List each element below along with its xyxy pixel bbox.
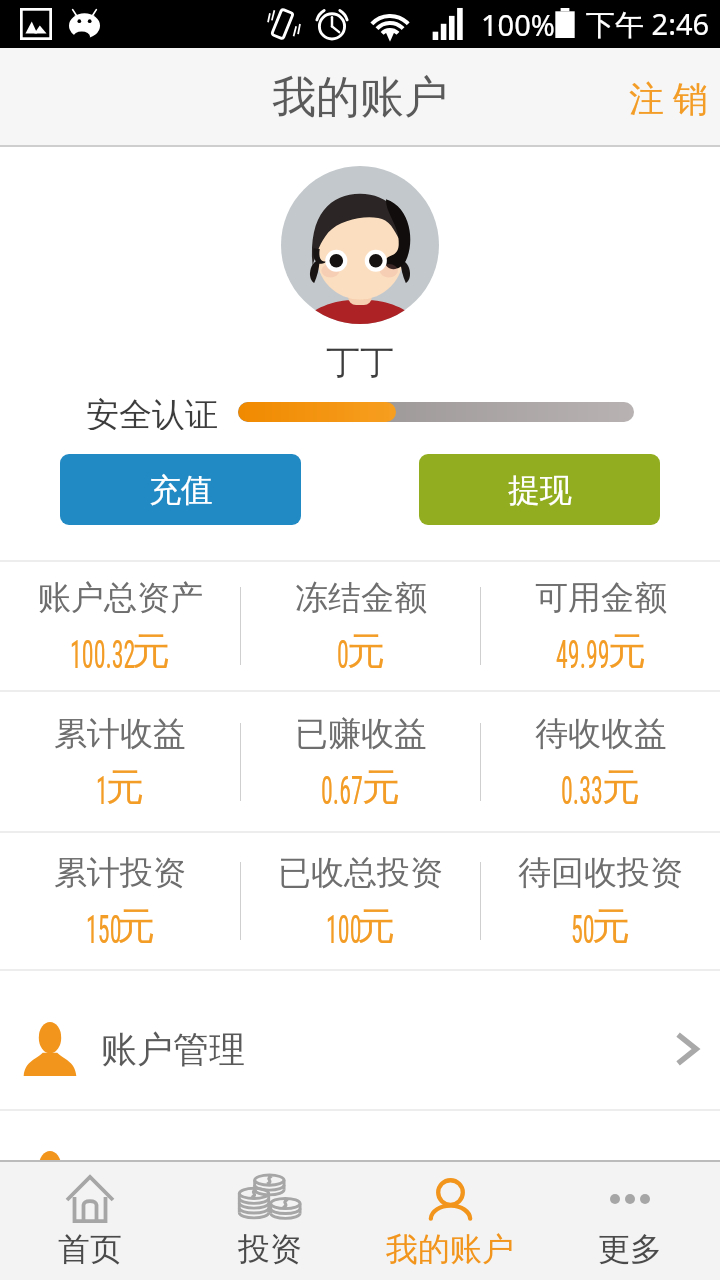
button[interactable]: My Account [360,1162,540,1280]
staticText: 账户总资产 [38,577,203,619]
staticText: 我的账户 [386,1229,514,1269]
staticText: 元 [592,902,630,950]
staticText: 元 [357,902,395,950]
staticText: 0.33 [561,769,603,805]
staticText: 元 [608,627,646,675]
button[interactable]: 提现 [419,454,660,525]
staticText: 元 [347,627,385,675]
button[interactable]: 账户管理 [0,971,720,1109]
staticText: 更多 [598,1229,662,1269]
staticText: 下午 2:46 [586,4,710,44]
staticText: 元 [602,763,640,811]
button[interactable]: 待收收益 [481,692,720,831]
staticText: 1 [96,769,108,805]
button[interactable]: 冻结金额 [241,562,480,690]
staticText: 49.99 [556,633,610,669]
button[interactable]: 资金管理 [0,1111,720,1226]
staticText: 安全认证 [86,394,218,430]
staticText: 50 [571,908,595,944]
staticText: 注 销 [629,74,709,122]
staticText: 可用金额 [535,577,667,619]
staticText: 100 [326,908,362,944]
button[interactable]: 可用金额 [481,562,720,690]
staticText: 100% [481,5,555,44]
button[interactable]: 充值 [60,454,301,525]
button[interactable]: 账户总资产 [0,562,240,690]
staticText: 首页 [58,1229,122,1269]
staticText: 元 [106,763,144,811]
button[interactable]: 已赚收益 [241,692,480,831]
staticText: 资金管理 [101,1155,245,1200]
button[interactable]: More [540,1162,720,1280]
button[interactable]: 待回收投资 [481,833,720,969]
staticText: 累计收益 [54,713,186,755]
staticText: 投资 [238,1229,302,1269]
button[interactable]: Home [0,1162,180,1280]
staticText: 我的账户 [272,70,448,125]
staticText: 元 [362,763,400,811]
staticText: 150 [86,908,122,944]
button[interactable]: 累计收益 [0,692,240,831]
staticText: 丁丁 [326,341,394,384]
staticText: 提现 [508,470,572,510]
staticText: 元 [117,902,155,950]
button[interactable]: Invest [180,1162,360,1280]
staticText: 元 [132,627,170,675]
staticText: 已收总投资 [278,852,443,894]
button[interactable]: 注 销 [605,60,720,136]
staticText: 充值 [149,470,213,510]
staticText: 账户管理 [101,1027,245,1072]
staticText: 冻结金额 [295,577,427,619]
button[interactable]: 累计投资 [0,833,240,969]
staticText: 已赚收益 [295,713,427,755]
staticText: 0.67 [321,769,363,805]
staticText: 待回收投资 [518,852,683,894]
staticText: 待收收益 [535,713,667,755]
button[interactable]: 已收总投资 [241,833,480,969]
staticText: 100.32 [70,633,135,669]
staticText: 累计投资 [54,852,186,894]
staticText: 0 [337,633,349,669]
